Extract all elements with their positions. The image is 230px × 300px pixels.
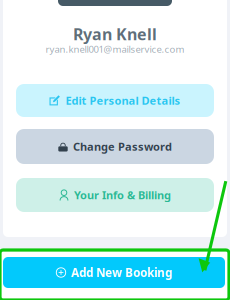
staticText: Add New Booking <box>71 265 172 280</box>
staticText: Change Password <box>73 139 172 154</box>
staticText: Edit Personal Details <box>65 93 180 108</box>
button[interactable]: Change Password <box>16 129 214 164</box>
staticText: Your Info & Billing <box>74 187 171 203</box>
staticText: Ryan Knell <box>73 23 157 45</box>
staticText: ryan.knell001@mailservice.com <box>45 42 184 56</box>
button[interactable]: Edit Personal Details <box>16 84 214 117</box>
button[interactable]: Your Info & Billing <box>16 178 214 212</box>
button[interactable]: Add New Booking <box>3 257 225 288</box>
